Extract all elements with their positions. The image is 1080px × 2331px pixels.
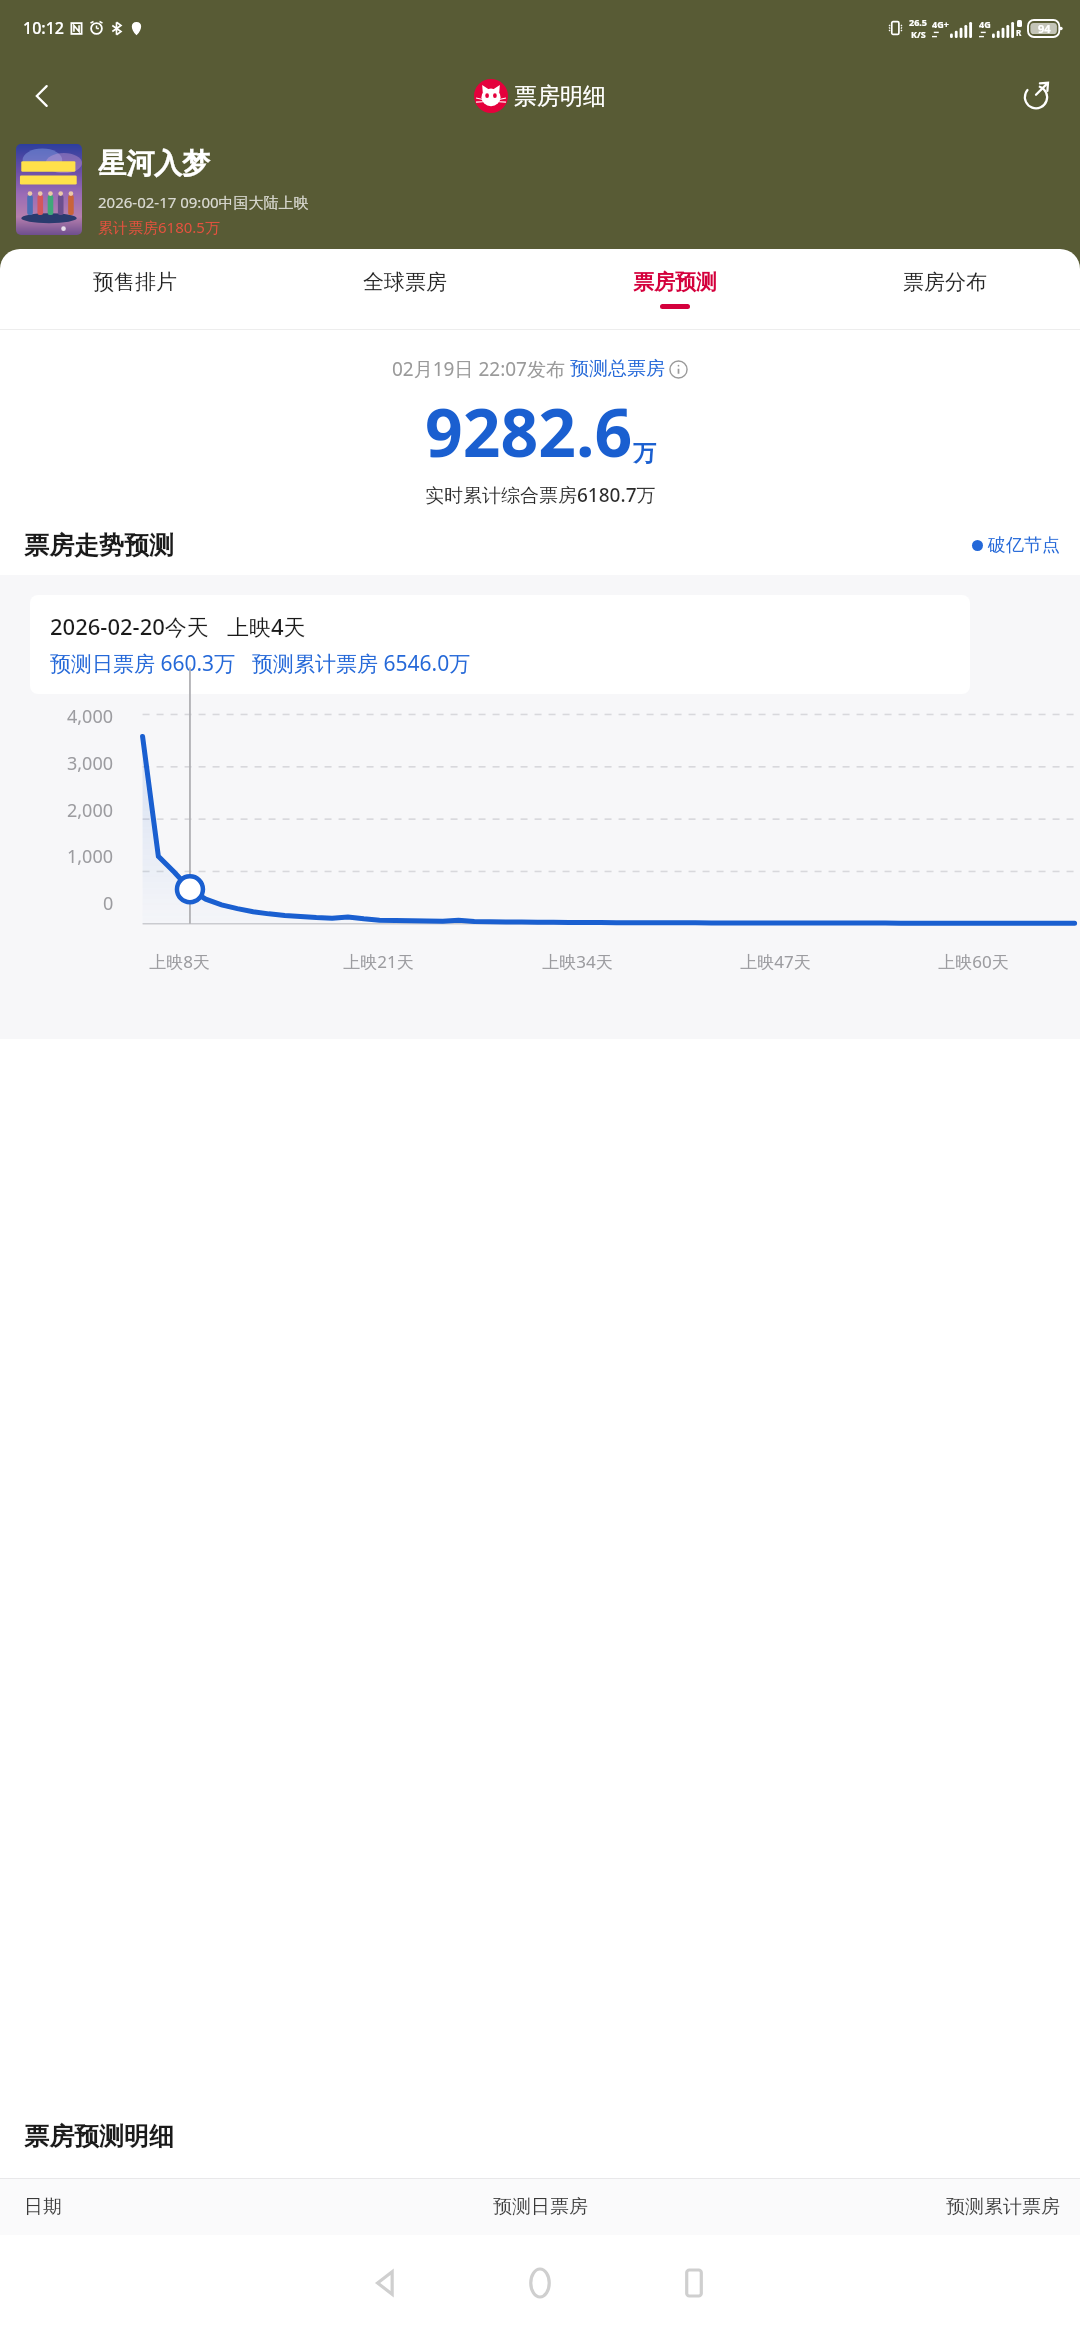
button[interactable]: 票房明细 (474, 79, 606, 113)
staticText: 上映8天 (149, 950, 210, 973)
staticText: 预测日票房 (493, 2195, 588, 2219)
staticText: 4G+ (932, 18, 949, 30)
staticText: 上映4天 (227, 611, 306, 641)
staticText: 全球票房 (363, 269, 447, 295)
staticText: R (1016, 27, 1022, 38)
staticText: 02月19日 22:07发布 (392, 356, 570, 382)
staticText: 2026-02-17 09:00中国大陆上映 (98, 192, 309, 212)
button[interactable]: 票房预测 (540, 249, 810, 329)
staticText: 星河入梦 (98, 146, 210, 181)
staticText: 票房预测明细 (24, 2121, 174, 2152)
button[interactable]: Back (341, 2238, 431, 2328)
staticText: 26.5 (909, 16, 927, 28)
staticText: K/S (911, 28, 926, 40)
button[interactable]: Back (16, 70, 68, 122)
button[interactable]: 预售排片 (0, 249, 270, 329)
button[interactable]: 星河入梦 (16, 144, 1064, 237)
staticText: 上映21天 (343, 950, 414, 973)
button[interactable]: 全球票房 (270, 249, 540, 329)
staticText: 0 (103, 891, 114, 916)
staticText: 预测累计票房 (946, 2195, 1060, 2219)
staticText: 票房明细 (514, 82, 606, 111)
staticText: 破亿节点 (988, 534, 1060, 557)
staticText: 4,000 (67, 704, 114, 729)
staticText: 1,000 (67, 844, 114, 869)
staticText: 4G (979, 18, 991, 30)
staticText: 预测总票房 (570, 357, 665, 381)
staticText: 票房分布 (903, 269, 987, 295)
staticText: 9282.6 (425, 386, 633, 476)
button[interactable]: 破亿节点 (972, 534, 1060, 557)
button[interactable]: Share (1010, 70, 1062, 122)
button[interactable]: 预测总票房 (570, 357, 688, 381)
staticText: 预测累计票房 6546.0万 (252, 649, 471, 678)
staticText: 累计票房6180.5万 (98, 217, 220, 237)
button[interactable]: Home (495, 2238, 585, 2328)
staticText: 票房预测 (633, 269, 717, 295)
staticText: 票房走势预测 (24, 530, 174, 561)
staticText: 上映34天 (542, 950, 613, 973)
staticText: 预售排片 (93, 269, 177, 295)
button[interactable]: Recent apps (649, 2238, 739, 2328)
staticText: 日期 (24, 2195, 62, 2219)
staticText: 上映60天 (938, 950, 1009, 973)
staticText: 2026-02-20今天 (50, 611, 209, 641)
staticText: 3,000 (67, 751, 114, 776)
staticText: 2,000 (67, 798, 114, 823)
staticText: 实时累计综合票房6180.7万 (425, 482, 656, 508)
staticText: 预测日票房 660.3万 (50, 649, 236, 678)
button[interactable]: 票房分布 (810, 249, 1080, 329)
staticText: 万 (633, 439, 656, 468)
staticText: 上映47天 (740, 950, 811, 973)
staticText: 94 (1038, 21, 1051, 36)
staticText: 10:12 (23, 17, 64, 39)
